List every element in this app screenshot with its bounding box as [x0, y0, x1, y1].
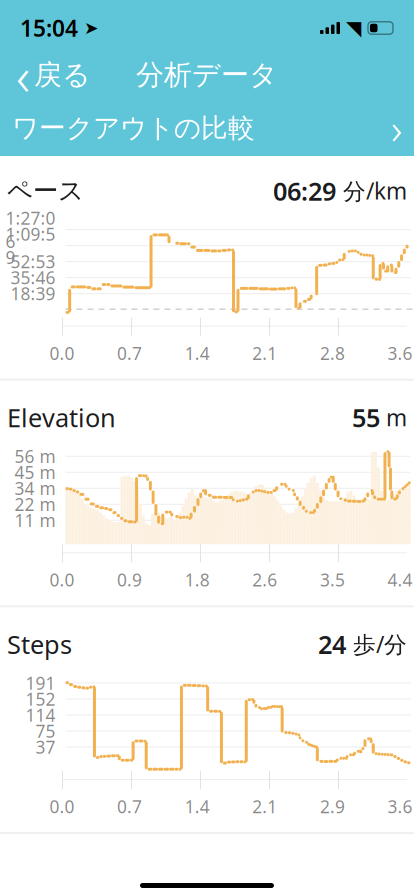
- staticText: 0.0: [49, 568, 74, 591]
- staticText: 1:09:59: [5, 223, 55, 269]
- staticText: 3.6: [387, 795, 412, 818]
- staticText: ペース: [7, 175, 84, 206]
- staticText: 1.8: [185, 568, 210, 591]
- staticText: 2.1: [252, 342, 277, 365]
- button[interactable]: ‹: [4, 53, 103, 97]
- staticText: 55: [352, 401, 380, 434]
- staticText: 2.8: [320, 342, 345, 365]
- staticText: 11 m: [14, 509, 55, 532]
- staticText: 114: [25, 703, 55, 726]
- staticText: 52:53: [10, 250, 55, 273]
- staticText: 2.6: [252, 568, 277, 591]
- staticText: 45 m: [14, 461, 55, 484]
- staticText: 18:39: [10, 282, 55, 305]
- staticText: 1.4: [185, 795, 210, 818]
- staticText: 3.6: [387, 342, 412, 365]
- staticText: 1:27:06: [5, 207, 55, 253]
- staticText: 分析データ: [136, 58, 278, 92]
- staticText: ワークアウトの比較: [12, 112, 255, 144]
- staticText: 0.0: [49, 795, 74, 818]
- staticText: Elevation: [7, 401, 116, 434]
- staticText: 2.9: [320, 795, 345, 818]
- staticText: 0.9: [117, 568, 142, 591]
- staticText: 06:29: [273, 174, 336, 208]
- staticText: 15:04: [20, 13, 78, 43]
- staticText: 0.0: [49, 342, 74, 365]
- staticText: ‹: [16, 40, 30, 110]
- staticText: 37: [35, 735, 55, 758]
- staticText: 歩/分: [346, 629, 407, 659]
- staticText: ◥: [346, 17, 361, 39]
- staticText: 152: [25, 687, 55, 710]
- staticText: 75: [35, 719, 55, 742]
- staticText: 分/km: [336, 176, 407, 206]
- button[interactable]: ワークアウトの比較: [0, 100, 414, 156]
- staticText: 4.4: [387, 568, 412, 591]
- staticText: 35:46: [10, 266, 55, 289]
- staticText: ➤: [84, 18, 99, 38]
- staticText: 3.5: [320, 568, 345, 591]
- staticText: 191: [25, 671, 55, 694]
- staticText: 22 m: [14, 493, 55, 516]
- staticText: 1.4: [185, 342, 210, 365]
- staticText: 24: [318, 627, 346, 661]
- staticText: 0.7: [117, 342, 142, 365]
- staticText: ›: [391, 100, 402, 156]
- staticText: 0.7: [117, 795, 142, 818]
- staticText: 戻る: [34, 58, 91, 92]
- staticText: 56 m: [14, 445, 55, 468]
- staticText: m: [380, 402, 407, 432]
- staticText: 34 m: [14, 477, 55, 500]
- staticText: 2.1: [252, 795, 277, 818]
- staticText: Steps: [7, 627, 72, 661]
